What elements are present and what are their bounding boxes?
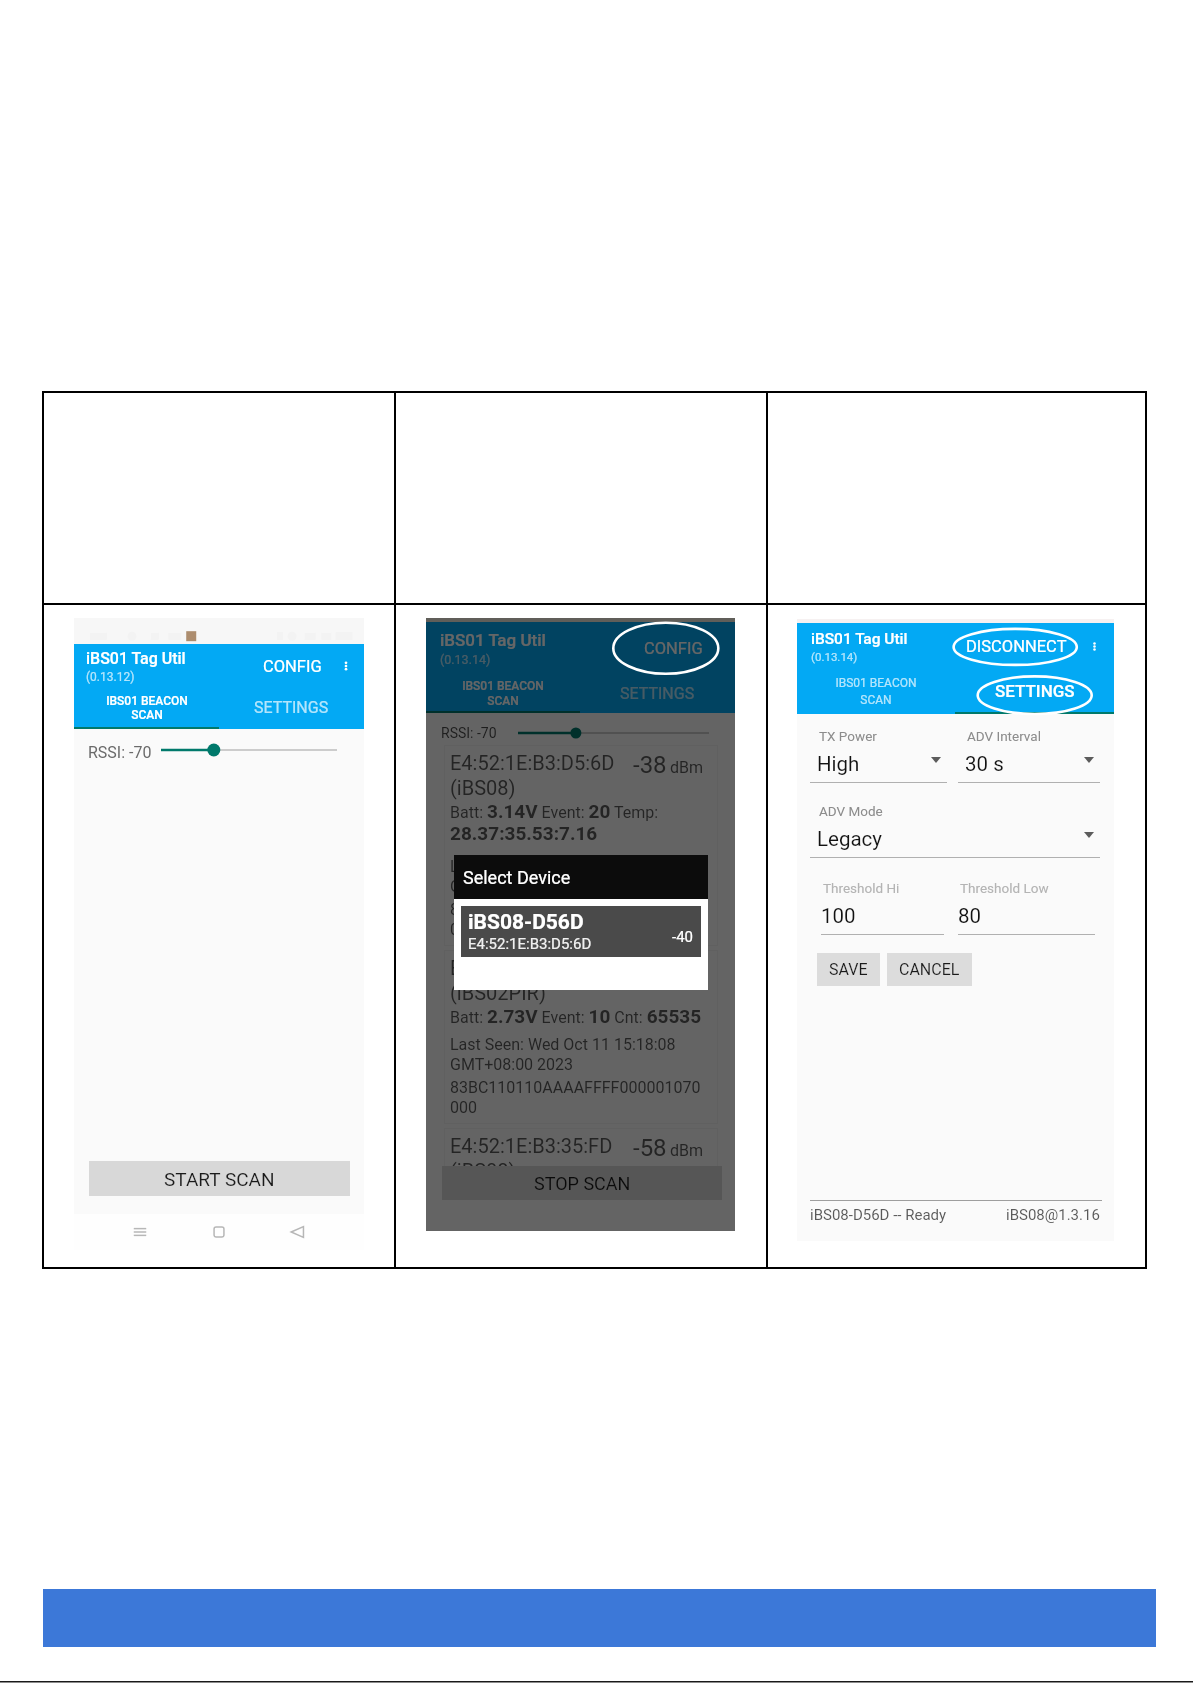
staticText: CONFIG [644, 639, 703, 658]
button[interactable]: E4:52:1E:B3:D5:6D (iBS08) [444, 745, 718, 946]
button[interactable]: DISCONNECT [961, 630, 1072, 663]
staticText: IBS01 BEACON SCAN [835, 676, 917, 707]
staticText: Threshold Low [960, 880, 1049, 896]
staticText: E4:52:1E:B3:D5:6D (iBS08) [450, 751, 615, 800]
staticText: TX Power [819, 728, 877, 744]
button[interactable]: SETTINGS [219, 688, 364, 727]
staticText: RSSI: -70 [88, 743, 152, 762]
button[interactable]: STOP SCAN [442, 1166, 722, 1200]
button[interactable]: Recents [127, 1219, 153, 1245]
staticText: iBS08-D56D -- Ready [810, 1206, 947, 1224]
staticText: 80 [958, 904, 982, 928]
staticText: DISCONNECT [966, 637, 1067, 656]
staticText: IBS01 BEACON SCAN [462, 679, 544, 707]
button[interactable]: E4:52:1E:B3:35:FD (iBS08) [444, 1128, 718, 1190]
button[interactable]: START SCAN [89, 1161, 350, 1196]
staticText: -58 [633, 1134, 667, 1162]
staticText: 30 s [965, 752, 1004, 776]
staticText: (0.13.12) [86, 670, 135, 684]
button[interactable]: ADV Mode [810, 803, 1100, 858]
staticText: 83BC110110AAAAFFFF000001070000 [450, 1078, 704, 1117]
staticText: (0.13.14) [811, 650, 858, 663]
staticText: 100 [821, 904, 856, 928]
staticText: IBS01 BEACON SCAN [106, 694, 188, 722]
staticText: Last Seen: Wed Oct 11 15:18:08 GMT+08:00… [450, 1035, 704, 1074]
staticText: iBS08-D56D [468, 910, 584, 935]
button[interactable]: More options [338, 658, 354, 674]
button[interactable]: Threshold Hi [821, 880, 944, 935]
button[interactable]: RSSI threshold slider [161, 744, 337, 756]
button[interactable]: CONFIG [258, 650, 327, 683]
staticText: Legacy [817, 827, 883, 851]
button[interactable]: Back [285, 1219, 311, 1245]
staticText: High [817, 752, 860, 776]
button[interactable]: CANCEL [887, 953, 972, 986]
button[interactable]: Threshold Low [958, 880, 1095, 935]
button[interactable]: CONFIG [622, 632, 725, 665]
button[interactable]: IBS01 BEACON SCAN [797, 670, 955, 712]
staticText: Select Device [463, 867, 571, 888]
button[interactable]: IBS01 BEACON SCAN [426, 675, 580, 711]
staticText: dBm [670, 1141, 704, 1160]
staticText: CANCEL [899, 960, 960, 979]
staticText: ADV Mode [819, 803, 883, 819]
staticText: Last Seen: Wed Oct 11 15:14:33 GMT+08:00… [450, 857, 704, 896]
staticText: iBS01 Tag Util [86, 649, 186, 668]
button[interactable]: IBS01 BEACON SCAN [74, 688, 219, 727]
button[interactable]: SETTINGS [955, 670, 1114, 712]
staticText: dBm [670, 758, 704, 777]
staticText: START SCAN [164, 1168, 275, 1190]
staticText: iBS01 Tag Util [811, 630, 908, 648]
staticText: RSSI: -70 [441, 725, 497, 741]
staticText: SETTINGS [620, 684, 695, 703]
staticText: 83BC110110AAAAFFFF000001070000 [450, 900, 704, 939]
button[interactable]: iBS08-D56D [461, 906, 701, 957]
button[interactable]: SETTINGS [580, 675, 735, 711]
button[interactable]: ADV Interval [958, 728, 1100, 783]
staticText: -64 [633, 956, 667, 984]
button[interactable]: TX Power [810, 728, 947, 783]
staticText: CONFIG [263, 657, 322, 676]
staticText: Batt: 2.73V Event: 10 Cnt: 65535 [450, 1005, 702, 1027]
staticText: SETTINGS [254, 698, 329, 717]
button[interactable]: More options [1087, 639, 1102, 654]
button[interactable]: E4:52:1E:B3:7A:2A (iBS02PIR) [444, 950, 718, 1124]
button[interactable]: Home [206, 1219, 232, 1245]
staticText: Batt: 3.14V Event: 20 Temp: 28.37:35.53:… [450, 800, 704, 845]
staticText: E4:52:1E:B3:7A:2A (iBS02PIR) [450, 956, 615, 1005]
staticText: -38 [633, 751, 667, 779]
button[interactable]: SAVE [817, 953, 880, 986]
staticText: iBS01 Tag Util [440, 630, 546, 650]
staticText: iBS08@1.3.16 [1006, 1206, 1100, 1224]
staticText: Threshold Hi [823, 880, 900, 896]
staticText: E4:52:1E:B3:D5:6D [468, 935, 592, 953]
staticText: (0.13.14) [440, 652, 491, 667]
staticText: SETTINGS [995, 681, 1075, 701]
staticText: ADV Interval [967, 728, 1041, 744]
staticText: STOP SCAN [534, 1173, 631, 1194]
staticText: SAVE [829, 960, 868, 979]
staticText: -40 [672, 928, 694, 946]
button[interactable]: RSSI threshold slider [518, 727, 709, 739]
staticText: E4:52:1E:B3:35:FD (iBS08) [450, 1134, 613, 1183]
